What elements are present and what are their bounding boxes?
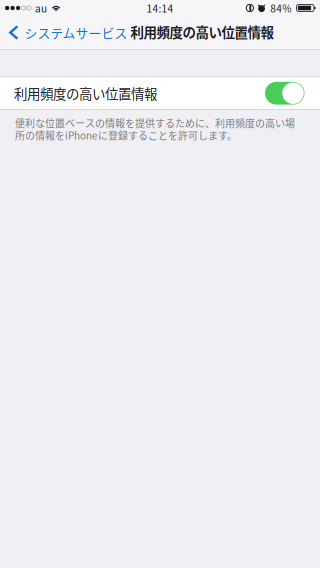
staticText: システムサービス bbox=[25, 23, 128, 42]
staticText: 利用頻度の高い位置情報 bbox=[131, 22, 274, 41]
button[interactable]: システムサービス bbox=[0, 16, 129, 49]
staticText: au bbox=[35, 1, 47, 15]
staticText: 便利な位置ベースの情報を提供するために、利用頻度の高い場所の情報をiPhoneに… bbox=[15, 117, 295, 141]
staticText: 利用頻度の高い位置情報 bbox=[14, 83, 157, 103]
staticText: 84% bbox=[270, 1, 291, 15]
staticText: 14:14 bbox=[146, 1, 173, 15]
button[interactable]: 利用頻度の高い位置情報 bbox=[0, 77, 320, 109]
